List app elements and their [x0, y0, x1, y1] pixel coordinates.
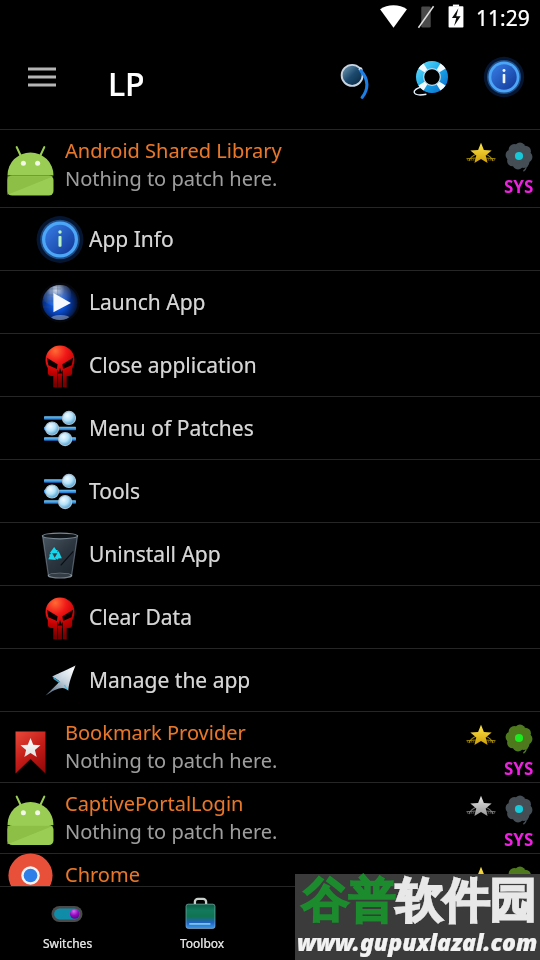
staticText: Bookmark Provider: [65, 719, 246, 746]
staticText: Android Shared Library: [65, 137, 282, 164]
staticText: App Info: [89, 225, 174, 254]
staticText: Chrome: [65, 861, 140, 887]
staticText: Launch App: [89, 288, 206, 317]
button[interactable]: Manage the app: [0, 649, 540, 712]
button[interactable]: Toolbox: [135, 887, 270, 960]
button[interactable]: Launch App: [0, 271, 540, 334]
staticText: www.gupuxlazal.com: [297, 926, 538, 957]
staticText: Toolbox: [180, 935, 225, 951]
staticText: LP: [108, 62, 145, 106]
button[interactable]: Tools: [0, 460, 540, 523]
staticText: Clear Data: [89, 603, 192, 632]
staticText: 11:29: [476, 4, 530, 33]
button[interactable]: Open navigation drawer: [10, 38, 74, 130]
staticText: 软件园: [395, 872, 536, 931]
button[interactable]: Chrome: [0, 854, 540, 887]
staticText: Nothing to patch here.: [65, 747, 278, 774]
button[interactable]: Search: [325, 38, 383, 130]
button[interactable]: Menu of Patches: [0, 397, 540, 460]
staticText: Close application: [89, 351, 257, 380]
staticText: SYS: [504, 757, 534, 780]
staticText: SYS: [504, 175, 534, 198]
staticText: CaptivePortalLogin: [65, 790, 244, 817]
staticText: Manage the app: [89, 666, 251, 695]
staticText: SYS: [504, 828, 534, 851]
staticText: 谷普: [301, 872, 395, 931]
staticText: Uninstall App: [89, 540, 221, 569]
staticText: Menu of Patches: [89, 414, 254, 443]
button[interactable]: CaptivePortalLogin: [0, 783, 540, 854]
staticText: Tools: [89, 477, 141, 506]
button[interactable]: Android Shared Library: [0, 130, 540, 208]
button[interactable]: Uninstall App: [0, 523, 540, 586]
button[interactable]: App Info: [0, 208, 540, 271]
staticText: Nothing to patch here.: [65, 818, 278, 845]
button[interactable]: About: [476, 38, 532, 130]
button[interactable]: Close application: [0, 334, 540, 397]
button[interactable]: Bookmark Provider: [0, 712, 540, 783]
button[interactable]: Switches: [0, 887, 135, 960]
staticText: Switches: [43, 935, 93, 951]
staticText: Nothing to patch here.: [65, 165, 278, 192]
button[interactable]: Clear Data: [0, 586, 540, 649]
button[interactable]: Support: [404, 38, 460, 130]
